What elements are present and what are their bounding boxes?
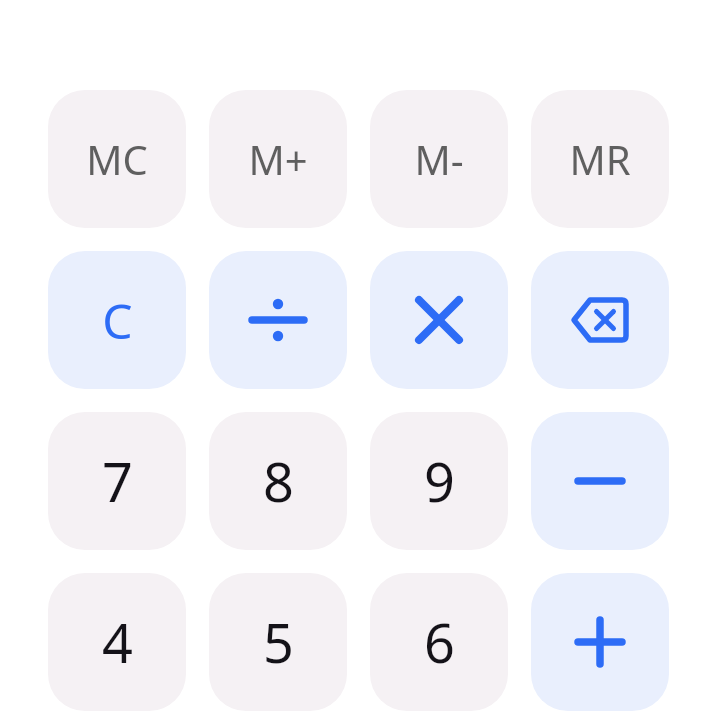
button[interactable]: 8 [209,412,347,550]
button[interactable]: 4 [48,573,186,711]
staticText: C [102,288,133,353]
button[interactable]: MC [48,90,186,228]
button[interactable]: Backspace [531,251,669,389]
staticText: 9 [424,444,455,518]
staticText: 7 [102,444,133,518]
button[interactable]: MR [531,90,669,228]
button[interactable]: Minus [531,412,669,550]
button[interactable]: 7 [48,412,186,550]
button[interactable]: 9 [370,412,508,550]
button[interactable]: 6 [370,573,508,711]
staticText: 5 [263,605,294,679]
button[interactable]: Plus [531,573,669,711]
staticText: MR [569,132,631,186]
button[interactable]: Multiply [370,251,508,389]
button[interactable]: 5 [209,573,347,711]
button[interactable]: M- [370,90,508,228]
staticText: M- [414,132,464,186]
staticText: 4 [102,605,133,679]
staticText: M+ [248,132,308,186]
staticText: 6 [424,605,455,679]
button[interactable]: C [48,251,186,389]
button[interactable]: M+ [209,90,347,228]
staticText: MC [86,132,148,186]
staticText: 8 [263,444,294,518]
button[interactable]: Divide [209,251,347,389]
